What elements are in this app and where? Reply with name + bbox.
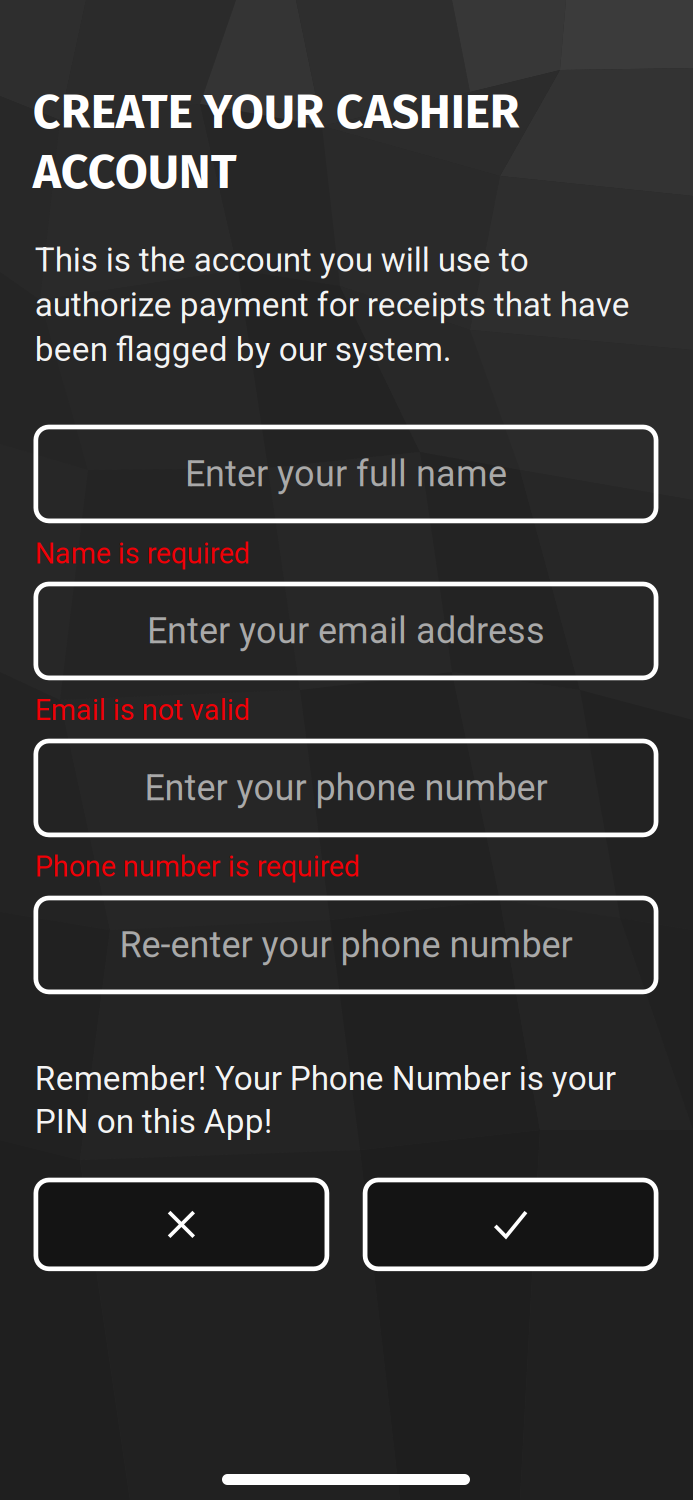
staticText: Remember! Your Phone Number is your PIN … xyxy=(35,1059,616,1141)
staticText: ACCOUNT xyxy=(33,143,237,201)
staticText: Enter your full name xyxy=(185,453,507,495)
button[interactable]: Cancel xyxy=(36,1180,327,1269)
button[interactable]: Confirm xyxy=(365,1180,656,1269)
button[interactable]: Enter your email address xyxy=(36,584,656,678)
staticText: Name is required xyxy=(35,537,250,570)
staticText: CREATE YOUR CASHIER xyxy=(33,83,520,141)
staticText: This is the account you will use to auth… xyxy=(35,240,630,369)
staticText: Enter your email address xyxy=(147,610,545,652)
staticText: Email is not valid xyxy=(35,693,250,727)
button[interactable]: Enter your full name xyxy=(36,427,656,521)
staticText: Phone number is required xyxy=(35,850,360,884)
button[interactable]: Enter your phone number xyxy=(36,741,656,835)
staticText: Re-enter your phone number xyxy=(119,924,572,966)
button[interactable]: Re-enter your phone number xyxy=(36,898,656,992)
staticText: Enter your phone number xyxy=(144,767,547,809)
